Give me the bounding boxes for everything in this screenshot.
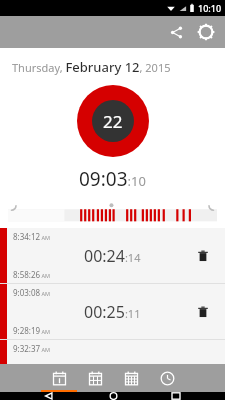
button[interactable]: 9:03:08 AM bbox=[0, 284, 225, 339]
staticText: 9:03:08 AM bbox=[13, 287, 51, 298]
staticText: 9:28:19 AM bbox=[13, 325, 51, 336]
button[interactable]: 8:34:12 AM bbox=[0, 228, 225, 283]
staticText: 9:32:37 AM bbox=[13, 343, 51, 354]
button[interactable]: 22 bbox=[77, 85, 149, 157]
staticText: Thursday, February 12, 2015 bbox=[12, 58, 171, 76]
button[interactable]: Delete bbox=[191, 300, 215, 324]
button[interactable]: Back bbox=[34, 392, 64, 400]
staticText: 10:10 bbox=[198, 2, 222, 14]
button[interactable]: Delete bbox=[191, 244, 215, 268]
button[interactable]: Month view bbox=[113, 364, 149, 392]
staticText: 00:25:11 bbox=[84, 301, 141, 323]
button[interactable]: Day view bbox=[41, 364, 77, 392]
button[interactable]: History bbox=[149, 364, 185, 392]
button[interactable]: Week view bbox=[77, 364, 113, 392]
staticText: 8:34:12 AM bbox=[13, 231, 51, 242]
staticText: 22 bbox=[103, 110, 123, 133]
button[interactable]: 9:32:37 AM bbox=[0, 340, 225, 364]
button[interactable]: Recents bbox=[161, 392, 191, 400]
staticText: 00:24:14 bbox=[84, 245, 141, 267]
button[interactable]: Settings bbox=[193, 19, 219, 45]
button[interactable]: Share bbox=[163, 19, 189, 45]
staticText: 8:58:26 AM bbox=[13, 269, 51, 280]
staticText: 09:03:10 bbox=[79, 166, 146, 192]
button[interactable]: Home bbox=[98, 392, 128, 400]
